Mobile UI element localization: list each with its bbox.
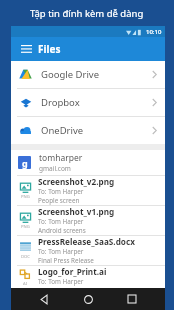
staticText: DOC	[21, 254, 30, 260]
staticText: To: Tom Harper	[38, 277, 84, 286]
staticText: AI	[23, 281, 28, 287]
staticText: Logo_for_Print.ai	[38, 266, 107, 277]
staticText: gmail.com	[39, 164, 71, 173]
button[interactable]: Open navigation menu	[18, 41, 34, 57]
staticText: Google Drive	[41, 68, 100, 81]
button[interactable]: Back	[33, 288, 55, 310]
button[interactable]: AI	[11, 266, 165, 288]
staticText: Final Press Release	[38, 256, 94, 265]
button[interactable]: Google Drive	[11, 61, 165, 88]
staticText: PressRelease_SaaS.docx	[38, 236, 135, 247]
button[interactable]: Dropbox	[11, 89, 165, 116]
staticText: Dropbox	[41, 96, 80, 109]
staticText: People screen	[38, 196, 80, 205]
button[interactable]: Home	[77, 288, 99, 310]
staticText: tomharper	[39, 152, 83, 164]
staticText: PNG	[21, 224, 30, 230]
staticText: OneDrive	[41, 124, 84, 137]
staticText: g	[22, 157, 28, 169]
staticText: To: Tom Harper	[38, 187, 84, 196]
staticText: Screenshot_v2.png	[38, 176, 115, 187]
staticText: Screenshot_v1.png	[38, 206, 115, 217]
button[interactable]: DOC	[11, 236, 165, 265]
staticText: PNG	[21, 194, 30, 200]
staticText: Tập tin đính kèm dễ dàng	[30, 7, 144, 20]
staticText: To: Tom Harper	[38, 217, 84, 226]
button[interactable]: PNG	[11, 206, 165, 235]
staticText: 10:10	[146, 28, 162, 36]
staticText: To: Tom Harper	[38, 247, 84, 256]
staticText: Files	[38, 42, 61, 56]
button[interactable]: OneDrive	[11, 117, 165, 144]
button[interactable]: g	[11, 150, 165, 175]
staticText: Android screens	[38, 226, 86, 235]
button[interactable]: PNG	[11, 176, 165, 205]
button[interactable]: Recent apps	[121, 288, 143, 310]
